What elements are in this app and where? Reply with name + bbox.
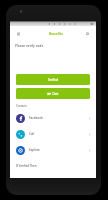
staticText: Verified — [48, 78, 59, 82]
staticText: Contacts — [16, 104, 27, 108]
staticText: Benefits — [49, 31, 64, 36]
button[interactable]: Facebook — [10, 110, 96, 126]
button[interactable]: Chat — [16, 88, 90, 99]
staticText: Explore — [29, 148, 40, 152]
button[interactable]: Menu — [14, 29, 23, 38]
staticText: Call — [29, 132, 35, 136]
staticText: Chat — [52, 92, 59, 96]
staticText: If Verified Then — [16, 164, 37, 168]
button[interactable]: Call — [10, 126, 96, 142]
staticText: Please verify code — [15, 43, 44, 47]
button[interactable]: Verified — [16, 74, 90, 85]
button[interactable]: Notifications — [83, 29, 92, 38]
staticText: Facebook — [29, 116, 43, 120]
button[interactable]: Explore — [10, 142, 96, 158]
